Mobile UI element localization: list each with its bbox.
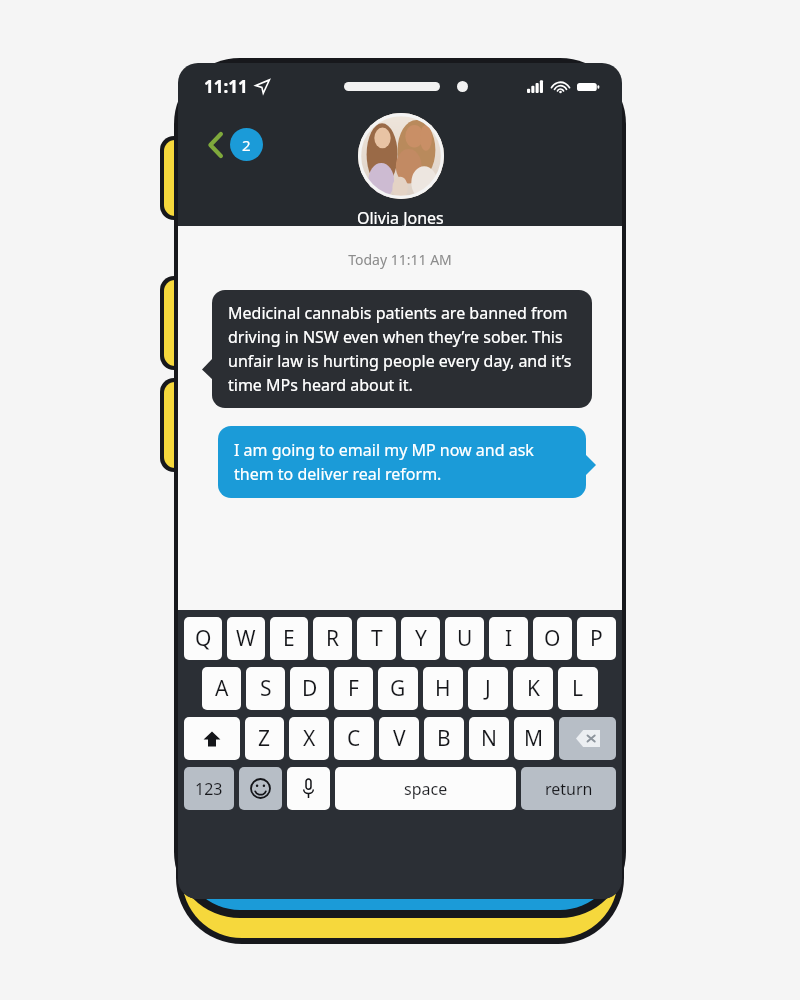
- staticText: T: [371, 624, 383, 653]
- button[interactable]: return: [521, 767, 616, 810]
- staticText: X: [303, 724, 316, 753]
- button[interactable]: space: [335, 767, 516, 810]
- button[interactable]: H: [423, 667, 463, 710]
- button[interactable]: Backspace: [559, 717, 616, 760]
- button[interactable]: Emoji: [239, 767, 282, 810]
- button[interactable]: J: [468, 667, 508, 710]
- button[interactable]: L: [558, 667, 598, 710]
- staticText: R: [326, 624, 340, 653]
- button[interactable]: I am going to email my MP now and ask th…: [218, 426, 586, 498]
- button[interactable]: Back, 2 unread: [205, 125, 266, 164]
- button[interactable]: T: [357, 617, 396, 660]
- button[interactable]: N: [469, 717, 509, 760]
- staticText: U: [457, 624, 473, 653]
- staticText: H: [435, 674, 451, 703]
- button[interactable]: A: [202, 667, 241, 710]
- staticText: I am going to email my MP now and ask th…: [234, 439, 570, 485]
- button[interactable]: Olivia Jones profile photo: [358, 113, 444, 199]
- staticText: N: [481, 724, 497, 753]
- button[interactable]: S: [246, 667, 285, 710]
- staticText: I: [505, 624, 513, 653]
- staticText: B: [437, 724, 451, 753]
- button[interactable]: M: [514, 717, 554, 760]
- staticText: 2: [242, 135, 251, 155]
- button[interactable]: E: [270, 617, 308, 660]
- staticText: C: [347, 724, 361, 753]
- staticText: J: [485, 674, 491, 703]
- staticText: W: [236, 624, 256, 653]
- button[interactable]: G: [378, 667, 418, 710]
- staticText: 123: [195, 778, 223, 800]
- button[interactable]: B: [424, 717, 464, 760]
- button[interactable]: U: [445, 617, 484, 660]
- button[interactable]: 123: [184, 767, 234, 810]
- button[interactable]: F: [334, 667, 373, 710]
- button[interactable]: I: [489, 617, 528, 660]
- button[interactable]: O: [533, 617, 572, 660]
- staticText: O: [544, 624, 561, 653]
- staticText: V: [393, 724, 406, 753]
- staticText: M: [524, 724, 544, 753]
- button[interactable]: C: [334, 717, 374, 760]
- button[interactable]: Medicinal cannabis patients are banned f…: [212, 290, 592, 408]
- staticText: K: [527, 674, 540, 703]
- staticText: Z: [258, 724, 271, 753]
- button[interactable]: Q: [184, 617, 222, 660]
- button[interactable]: R: [313, 617, 352, 660]
- button[interactable]: X: [289, 717, 329, 760]
- staticText: Today 11:11 AM: [178, 250, 622, 269]
- staticText: E: [283, 624, 295, 653]
- button[interactable]: K: [513, 667, 553, 710]
- staticText: 11:11: [204, 75, 248, 98]
- staticText: S: [260, 674, 272, 703]
- button[interactable]: V: [379, 717, 419, 760]
- staticText: F: [348, 674, 359, 703]
- staticText: Q: [195, 624, 212, 653]
- staticText: L: [572, 674, 584, 703]
- staticText: D: [302, 674, 318, 703]
- staticText: Y: [415, 624, 427, 653]
- button[interactable]: P: [577, 617, 616, 660]
- staticText: G: [390, 674, 406, 703]
- button[interactable]: D: [290, 667, 329, 710]
- button[interactable]: Voice input: [287, 767, 330, 810]
- button[interactable]: Z: [245, 717, 284, 760]
- staticText: Olivia Jones: [357, 207, 444, 226]
- staticText: P: [590, 624, 603, 653]
- staticText: Medicinal cannabis patients are banned f…: [228, 302, 576, 396]
- staticText: A: [215, 674, 229, 703]
- staticText: return: [545, 778, 593, 800]
- button[interactable]: Y: [401, 617, 440, 660]
- button[interactable]: W: [227, 617, 265, 660]
- button[interactable]: Shift: [184, 717, 240, 760]
- staticText: space: [404, 778, 448, 800]
